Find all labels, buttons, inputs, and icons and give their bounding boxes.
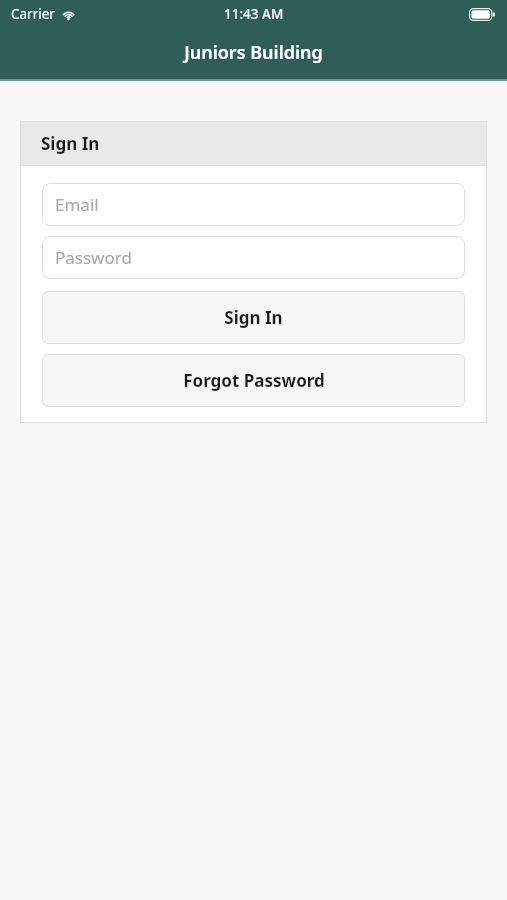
staticText: Sign In <box>41 132 100 155</box>
button[interactable]: Sign In <box>42 291 465 344</box>
button[interactable]: Password <box>42 236 465 279</box>
staticText: Sign In <box>224 306 283 329</box>
staticText: Password <box>55 246 132 269</box>
staticText: Forgot Password <box>183 369 325 392</box>
button[interactable]: Forgot Password <box>42 354 465 407</box>
staticText: Email <box>55 193 99 216</box>
staticText: Carrier <box>11 5 55 23</box>
staticText: 11:43 AM <box>224 5 284 23</box>
other: Wi-Fi signal <box>61 7 76 22</box>
staticText: Juniors Building <box>184 40 323 65</box>
button[interactable]: Email <box>42 183 465 226</box>
other: Battery full <box>469 8 495 21</box>
